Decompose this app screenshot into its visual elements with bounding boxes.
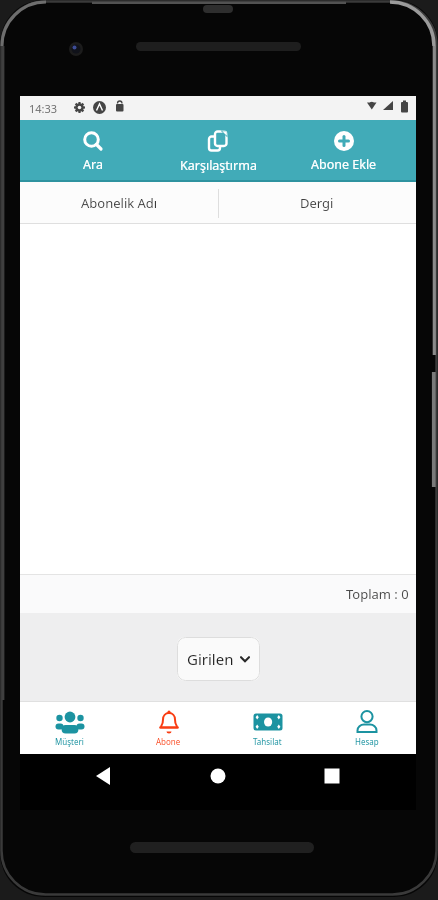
staticText: Dergi xyxy=(300,194,334,212)
staticText: Toplam : 0 xyxy=(346,585,409,603)
staticText: Abone Ekle xyxy=(311,156,377,173)
button[interactable] xyxy=(190,754,246,798)
button[interactable]: Abone Ekle xyxy=(284,120,404,182)
staticText: Tahsilat xyxy=(253,736,282,747)
staticText: Abone xyxy=(156,736,181,747)
button[interactable] xyxy=(76,754,132,798)
button[interactable]: Müşteri xyxy=(20,701,119,754)
button[interactable]: Ara xyxy=(53,120,133,182)
button[interactable]: Karşılaştırma xyxy=(148,120,288,182)
button[interactable]: Hesap xyxy=(317,701,416,754)
staticText: 14:33 xyxy=(29,101,58,116)
staticText: Hesap xyxy=(355,736,379,747)
staticText: Abonelik Adı xyxy=(81,194,158,212)
button[interactable]: Toplam : 0 xyxy=(20,574,416,613)
staticText: Müşteri xyxy=(55,736,84,747)
button[interactable]: Tahsilat xyxy=(218,701,317,754)
staticText: Ara xyxy=(83,156,103,173)
button[interactable]: Abonelik Adı xyxy=(20,182,218,224)
staticText: Girilen xyxy=(187,649,234,669)
button[interactable] xyxy=(304,754,360,798)
staticText: Karşılaştırma xyxy=(180,157,257,174)
button[interactable]: Girilen xyxy=(177,637,260,681)
button[interactable]: Dergi xyxy=(218,182,416,224)
button[interactable]: Abone xyxy=(119,701,218,754)
